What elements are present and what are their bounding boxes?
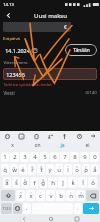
staticText: 4: [33, 153, 37, 161]
button[interactable]: x: [0, 141, 25, 150]
button[interactable]: 3: [20, 152, 29, 162]
button[interactable]: /: [88, 177, 97, 188]
button[interactable]: :: [46, 190, 55, 201]
button[interactable]: ?123: [1, 203, 12, 214]
staticText: 8: [73, 153, 77, 161]
button[interactable]: ?: [76, 190, 85, 201]
button[interactable]: Emoji: [3, 132, 11, 140]
button[interactable]: +: [58, 177, 67, 188]
button[interactable]: @: [3, 177, 11, 188]
button[interactable]: 14.1.2024: [3, 45, 62, 56]
button[interactable]: Tänään: [65, 44, 97, 56]
button[interactable]: .: [74, 203, 82, 214]
button[interactable]: Backspace: [86, 190, 99, 201]
staticText: w: [12, 166, 17, 174]
staticText: s: [15, 179, 18, 187]
button[interactable]: *: [16, 190, 25, 201]
button[interactable]: 8: [70, 152, 79, 162]
staticText: ?: [80, 191, 82, 196]
button[interactable]: 123456: [3, 68, 97, 80]
staticText: =: [22, 165, 24, 170]
staticText: n: [69, 192, 73, 200]
staticText: h: [51, 179, 55, 187]
button[interactable]: _: [30, 177, 38, 188]
button[interactable]: 6: [50, 152, 59, 162]
button[interactable]: (: [68, 177, 77, 188]
staticText: /: [92, 178, 94, 183]
button[interactable]: ;: [56, 190, 65, 201]
button[interactable]: &: [37, 164, 45, 175]
staticText: c: [39, 192, 42, 200]
button[interactable]: ei: [75, 141, 100, 150]
button[interactable]: ": [26, 190, 35, 201]
button[interactable]: &: [39, 177, 47, 188]
button[interactable]: €: [3, 22, 71, 32]
button[interactable]: *: [73, 164, 81, 175]
button[interactable]: Clipboard: [32, 132, 40, 140]
button[interactable]: ': [55, 164, 63, 175]
staticText: k: [71, 179, 75, 187]
staticText: (: [85, 165, 87, 170]
button[interactable]: 7: [60, 152, 69, 162]
button[interactable]: More: [89, 132, 97, 140]
staticText: _: [33, 178, 35, 183]
button[interactable]: ja: [50, 141, 75, 150]
staticText: p: [84, 166, 88, 174]
button[interactable]: GIF: [17, 132, 25, 140]
button[interactable]: Voice input: [60, 132, 68, 140]
button[interactable]: 4: [30, 152, 39, 162]
button[interactable]: Shift: [1, 190, 15, 201]
button[interactable]: Home: [47, 215, 54, 222]
button[interactable]: #: [12, 177, 20, 188]
button[interactable]: (: [82, 164, 90, 175]
button[interactable]: ): [78, 177, 87, 188]
button[interactable]: Translate: [46, 132, 54, 140]
button[interactable]: -: [48, 177, 57, 188]
staticText: 0/140: [85, 90, 97, 96]
staticText: e: [21, 166, 25, 174]
staticText: r: [31, 166, 34, 174]
button[interactable]: x: [10, 164, 18, 175]
staticText: x: [13, 165, 15, 170]
button[interactable]: 1: [1, 152, 9, 162]
button[interactable]: 5: [40, 152, 49, 162]
staticText: &: [40, 165, 43, 170]
staticText: x: [29, 192, 33, 200]
button[interactable]: Enter: [83, 203, 99, 214]
staticText: @: [5, 178, 9, 183]
button[interactable]: Settings: [75, 132, 83, 140]
button[interactable]: !: [66, 190, 75, 201]
staticText: g: [41, 179, 45, 187]
staticText: l: [82, 179, 84, 187]
button[interactable]: Recents: [73, 215, 80, 222]
button[interactable]: %: [28, 164, 36, 175]
button[interactable]: $: [21, 177, 29, 188]
button[interactable]: 9: [80, 152, 89, 162]
staticText: a: [5, 179, 9, 187]
button[interactable]: +: [1, 164, 9, 175]
staticText: 6: [53, 153, 57, 161]
staticText: ': [40, 191, 41, 196]
button[interactable]: Back: [3, 10, 14, 21]
staticText: 5: [43, 153, 47, 161]
button[interactable]: ": [64, 164, 72, 175]
button[interactable]: ): [91, 164, 99, 175]
staticText: 14.13: [3, 2, 14, 8]
button[interactable]: Back: [20, 215, 27, 222]
button[interactable]: ': [36, 190, 45, 201]
button[interactable]: on: [25, 141, 50, 150]
staticText: 7: [63, 153, 67, 161]
button[interactable]: ,: [23, 203, 31, 214]
button[interactable]: 0: [90, 152, 99, 162]
button[interactable]: -: [46, 164, 54, 175]
staticText: m: [78, 192, 84, 200]
staticText: 1: [3, 153, 7, 161]
button[interactable]: Emoji: [13, 203, 22, 214]
button[interactable]: =: [19, 164, 27, 175]
staticText: ': [59, 165, 60, 170]
button[interactable]: 2: [10, 152, 19, 162]
staticText: $: [24, 178, 26, 183]
staticText: (: [72, 178, 74, 183]
staticText: o: [75, 166, 79, 174]
